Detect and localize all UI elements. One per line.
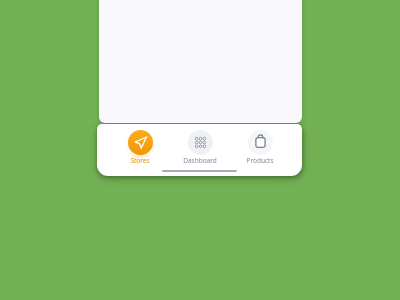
staticText: Stores — [130, 156, 150, 165]
button[interactable]: Stores — [110, 130, 170, 165]
staticText: Products — [246, 156, 274, 165]
button[interactable]: Dashboard — [170, 130, 230, 165]
button[interactable]: Products — [230, 130, 290, 165]
staticText: Dashboard — [183, 156, 217, 165]
